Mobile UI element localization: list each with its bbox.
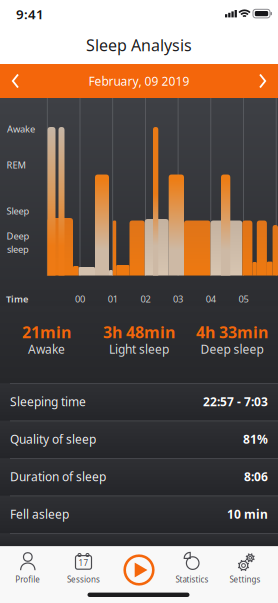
staticText: Sleeping time [10, 394, 86, 410]
staticText: 02 [140, 293, 150, 305]
staticText: Quality of sleep [10, 431, 96, 447]
button[interactable]: Statistics [166, 546, 218, 590]
staticText: Sleep Analysis [86, 34, 192, 56]
staticText: 9:41 [16, 5, 44, 23]
staticText: 05 [238, 293, 248, 305]
staticText: 00 [75, 293, 85, 305]
staticText: Awake [28, 341, 65, 357]
staticText: Duration of sleep [10, 469, 106, 485]
staticText: 22:57 - 7:03 [203, 394, 268, 410]
staticText: Deep [6, 230, 29, 242]
staticText: sleep [7, 243, 29, 255]
staticText: Fell asleep [10, 506, 69, 522]
staticText: REM [6, 159, 25, 171]
staticText: Light sleep [109, 341, 169, 357]
staticText: 01 [108, 293, 118, 305]
staticText: 4h 33min [196, 321, 268, 343]
staticText: 3h 48min [103, 321, 175, 343]
button[interactable]: Sessions [57, 546, 109, 590]
staticText: 81% [243, 431, 268, 447]
button[interactable]: Previous day [0, 64, 30, 98]
staticText: February, 09 2019 [88, 73, 189, 89]
staticText: 04 [206, 293, 216, 305]
staticText: 03 [173, 293, 183, 305]
staticText: Sessions [67, 574, 100, 585]
staticText: Time [6, 293, 28, 305]
button[interactable]: Next day [248, 64, 278, 98]
staticText: 8:06 [244, 469, 268, 485]
staticText: Deep sleep [200, 341, 263, 357]
staticText: Statistics [175, 574, 208, 585]
button[interactable]: Profile [2, 546, 54, 590]
button[interactable]: Settings [219, 546, 271, 590]
staticText: 10 min [227, 506, 268, 522]
staticText: Sleep [6, 205, 29, 217]
staticText: Awake [7, 123, 35, 135]
staticText: 17 [78, 558, 88, 568]
staticText: 21min [22, 321, 71, 343]
staticText: Settings [229, 574, 260, 585]
button[interactable]: Play [119, 550, 159, 590]
staticText: Profile [15, 574, 40, 585]
